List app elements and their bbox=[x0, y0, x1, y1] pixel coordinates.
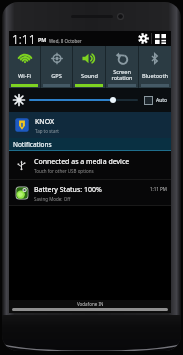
staticText: Bluetooth bbox=[142, 72, 168, 80]
staticText: Sound bbox=[81, 72, 98, 80]
staticText: Screen rotation bbox=[111, 68, 133, 82]
staticText: Tap to start bbox=[35, 128, 59, 134]
staticText: Battery Status: 100% bbox=[34, 185, 102, 195]
button[interactable]: Battery Status: 100% bbox=[9, 180, 171, 206]
staticText: Wi-Fi bbox=[18, 72, 31, 80]
staticText: Vodafone IN bbox=[77, 301, 104, 307]
button[interactable]: Auto brightness bbox=[144, 96, 153, 105]
staticText: GPS bbox=[51, 72, 62, 80]
button[interactable]: Wi-Fi bbox=[9, 46, 40, 88]
staticText: Saving Mode: Off bbox=[34, 196, 71, 202]
staticText: 1:11 bbox=[12, 31, 36, 46]
staticText: Notifications bbox=[13, 140, 52, 149]
staticText: KNOX bbox=[35, 117, 55, 127]
button[interactable]: GPS bbox=[41, 46, 72, 88]
staticText: Wed, 8 October bbox=[49, 38, 82, 44]
staticText: Touch for other USB options bbox=[34, 168, 94, 174]
button[interactable]: Sound bbox=[73, 46, 105, 88]
staticText: PM bbox=[38, 36, 47, 43]
staticText: Auto bbox=[156, 97, 168, 104]
staticText: 1:11 PM bbox=[150, 186, 167, 192]
button[interactable]: KNOX bbox=[9, 112, 171, 138]
button[interactable]: Connected as a media device bbox=[9, 151, 171, 180]
button[interactable]: Screen rotation bbox=[106, 46, 138, 88]
staticText: Connected as a media device bbox=[34, 157, 130, 167]
button[interactable]: Bluetooth bbox=[139, 46, 171, 88]
button[interactable]: Settings bbox=[135, 31, 151, 46]
button[interactable]: Edit quick settings bbox=[152, 31, 169, 46]
